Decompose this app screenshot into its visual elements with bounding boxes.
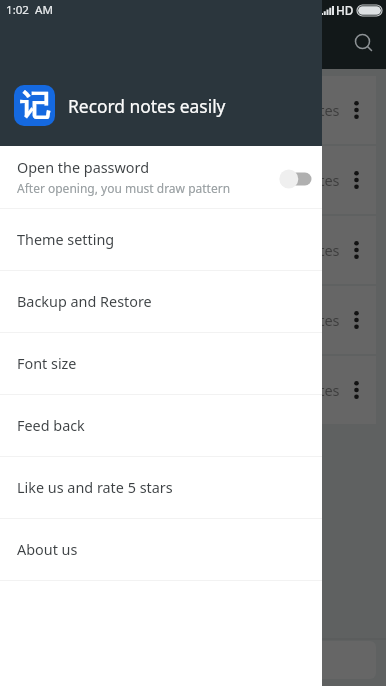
button[interactable]: Shopping list and the team meeting and n…: [10, 146, 376, 214]
staticText: Record notes easily: [68, 94, 226, 118]
button[interactable]: Search: [347, 26, 383, 62]
button[interactable]: Shopping list and the team meeting and n…: [10, 216, 376, 284]
staticText: Shopping list and the team meeting and n…: [24, 100, 340, 120]
staticText: Shopping list and the team meeting and n…: [24, 240, 340, 260]
staticText: Shopping list and the team meeting and n…: [24, 170, 340, 190]
button[interactable]: Feed back: [0, 395, 322, 456]
staticText: Open the password: [17, 158, 150, 178]
staticText: About us: [17, 540, 78, 560]
button[interactable]: Backup and Restore: [0, 271, 322, 332]
staticText: Font size: [17, 354, 77, 374]
staticText: Shopping list and the team meeting and n…: [24, 380, 340, 400]
button[interactable]: More options: [343, 377, 369, 403]
staticText: Shopping list and the team meeting and n…: [24, 310, 340, 330]
staticText: Theme setting: [17, 230, 115, 250]
staticText: Feed back: [17, 416, 85, 436]
staticText: 1:02 AM: [6, 2, 53, 18]
button[interactable]: More options: [343, 237, 369, 263]
button[interactable]: Like us and rate 5 stars: [0, 457, 322, 518]
button[interactable]: Open the password: [0, 146, 322, 208]
button[interactable]: More options: [343, 167, 369, 193]
button[interactable]: More options: [343, 97, 369, 123]
staticText: Backup and Restore: [17, 292, 152, 312]
button[interactable]: More options: [343, 307, 369, 333]
staticText: HD: [336, 2, 354, 18]
button[interactable]: Shopping list and the team meeting and n…: [10, 356, 376, 424]
button[interactable]: Shopping list and the team meeting and n…: [10, 76, 376, 144]
button[interactable]: About us: [0, 519, 322, 580]
button[interactable]: Shopping list and the team meeting and n…: [10, 286, 376, 354]
staticText: 记: [20, 87, 50, 125]
button[interactable]: Theme setting: [0, 209, 322, 270]
button[interactable]: Font size: [0, 333, 322, 394]
staticText: Like us and rate 5 stars: [17, 478, 173, 498]
button[interactable]: Toggle password lock: [279, 168, 321, 190]
staticText: After opening, you must draw pattern: [17, 180, 231, 196]
button[interactable]: [10, 641, 376, 679]
